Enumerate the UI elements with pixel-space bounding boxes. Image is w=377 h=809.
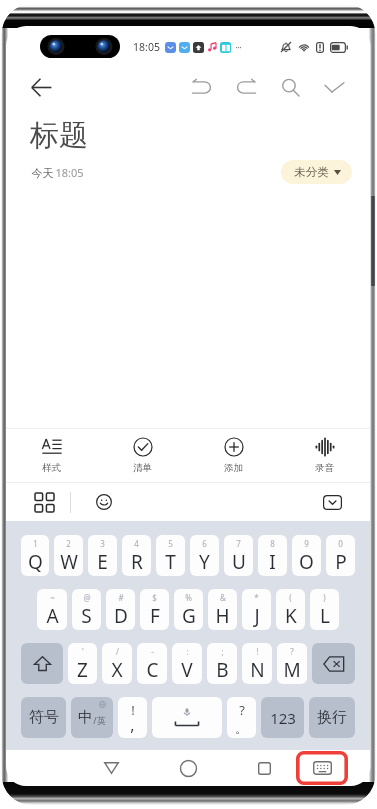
staticText: J bbox=[254, 603, 260, 629]
button[interactable] bbox=[21, 643, 63, 684]
staticText: - bbox=[151, 646, 154, 657]
button[interactable]: ; bbox=[207, 643, 237, 684]
staticText: ! bbox=[131, 701, 135, 719]
staticText: # bbox=[118, 592, 124, 603]
staticText: O bbox=[299, 549, 314, 575]
staticText: ? bbox=[290, 646, 294, 657]
staticText: ! bbox=[256, 646, 259, 657]
button[interactable]: 8 bbox=[258, 535, 287, 576]
button[interactable]: 符号 bbox=[21, 697, 66, 738]
button[interactable]: Search bbox=[273, 70, 307, 104]
button[interactable]: ? bbox=[227, 697, 256, 738]
button[interactable]: Back bbox=[96, 753, 126, 783]
staticText: H bbox=[215, 603, 230, 629]
button[interactable]: Home bbox=[173, 753, 203, 783]
button[interactable]: # bbox=[106, 589, 135, 630]
staticText: V bbox=[181, 657, 193, 683]
button[interactable] bbox=[152, 697, 222, 738]
button[interactable]: 2 bbox=[54, 535, 83, 576]
button[interactable]: % bbox=[174, 589, 203, 630]
staticText: @ bbox=[83, 592, 91, 603]
staticText: 8 bbox=[270, 538, 275, 549]
staticText: 换行 bbox=[317, 708, 347, 727]
button[interactable]: 添加 bbox=[188, 429, 279, 482]
button[interactable]: 6 bbox=[190, 535, 219, 576]
staticText: W bbox=[60, 549, 78, 575]
staticText: ( bbox=[289, 592, 292, 603]
button[interactable]: ' bbox=[68, 643, 97, 684]
button[interactable]: 录音 bbox=[279, 429, 370, 482]
button[interactable]: 5 bbox=[156, 535, 185, 576]
staticText: K bbox=[285, 603, 297, 629]
button[interactable]: / bbox=[102, 643, 132, 684]
staticText: 3 bbox=[100, 538, 105, 549]
button[interactable]: ! bbox=[118, 697, 147, 738]
staticText: , bbox=[130, 714, 135, 736]
staticText: 未分类 bbox=[294, 165, 329, 179]
staticText: 9 bbox=[304, 538, 309, 549]
button[interactable]: Emoji bbox=[90, 488, 118, 516]
staticText: ••• bbox=[235, 44, 242, 51]
button[interactable]: ) bbox=[310, 589, 339, 630]
button[interactable]: $ bbox=[140, 589, 169, 630]
button[interactable]: @ bbox=[72, 589, 101, 630]
staticText: & bbox=[220, 592, 226, 603]
staticText: D bbox=[114, 603, 128, 629]
staticText: 录音 bbox=[315, 462, 334, 474]
staticText: 123 bbox=[270, 708, 296, 728]
staticText: F bbox=[150, 603, 160, 629]
staticText: L bbox=[320, 603, 330, 629]
staticText: T bbox=[165, 549, 176, 575]
button[interactable]: Undo bbox=[185, 70, 219, 104]
staticText: I bbox=[269, 549, 276, 575]
staticText: E bbox=[97, 549, 108, 575]
staticText: ~ bbox=[50, 592, 55, 603]
button[interactable]: 9 bbox=[292, 535, 321, 576]
staticText: ? bbox=[239, 701, 245, 719]
staticText: 。 bbox=[235, 720, 248, 736]
staticText: Z bbox=[77, 657, 88, 683]
button[interactable] bbox=[312, 643, 355, 684]
button[interactable]: Redo bbox=[229, 70, 263, 104]
button[interactable]: Done bbox=[317, 70, 351, 104]
staticText: 清单 bbox=[133, 462, 152, 474]
button[interactable]: 4 bbox=[122, 535, 151, 576]
staticText: 4 bbox=[134, 538, 139, 549]
button[interactable]: : bbox=[172, 643, 202, 684]
button[interactable]: 样式 bbox=[6, 429, 97, 482]
staticText: R bbox=[131, 549, 143, 575]
button[interactable]: 中 bbox=[71, 697, 113, 738]
staticText: X bbox=[111, 657, 123, 683]
button[interactable]: 清单 bbox=[97, 429, 188, 482]
staticText: 7 bbox=[236, 538, 241, 549]
staticText: A bbox=[46, 603, 59, 629]
button[interactable]: 换行 bbox=[309, 697, 355, 738]
button[interactable]: 3 bbox=[88, 535, 117, 576]
button[interactable]: Switch keyboard bbox=[296, 751, 348, 785]
button[interactable]: ( bbox=[276, 589, 305, 630]
button[interactable]: & bbox=[208, 589, 237, 630]
button[interactable]: - bbox=[137, 643, 167, 684]
button[interactable]: Back bbox=[24, 70, 58, 104]
button[interactable]: 123 bbox=[261, 697, 304, 738]
staticText: 添加 bbox=[224, 462, 243, 474]
staticText: 0 bbox=[338, 538, 343, 549]
button[interactable]: ~ bbox=[37, 589, 67, 630]
staticText: ; bbox=[221, 646, 224, 657]
staticText: 符号 bbox=[29, 708, 59, 727]
staticText: 今天 bbox=[30, 165, 55, 180]
staticText: $ bbox=[152, 592, 157, 603]
staticText: * bbox=[254, 592, 259, 603]
button[interactable]: * bbox=[242, 589, 271, 630]
button[interactable]: 1 bbox=[21, 535, 49, 576]
button[interactable]: Hide keyboard bbox=[318, 488, 346, 516]
button[interactable]: 7 bbox=[224, 535, 253, 576]
button[interactable]: Keyboard layouts bbox=[30, 488, 58, 516]
button[interactable]: ? bbox=[277, 643, 307, 684]
button[interactable]: 0 bbox=[326, 535, 355, 576]
staticText: N bbox=[250, 657, 265, 683]
button[interactable]: Recents bbox=[249, 753, 279, 783]
button[interactable]: ! bbox=[242, 643, 272, 684]
button[interactable]: 未分类 bbox=[281, 160, 352, 184]
staticText: B bbox=[216, 657, 229, 683]
